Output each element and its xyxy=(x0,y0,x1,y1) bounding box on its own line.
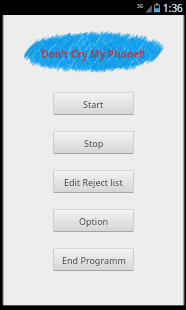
staticText: End Programm xyxy=(62,254,126,266)
staticText: Option xyxy=(79,215,109,227)
button[interactable]: Option xyxy=(53,209,134,232)
button[interactable]: End Programm xyxy=(53,248,134,271)
button[interactable]: Stop xyxy=(53,131,134,154)
staticText: Stop xyxy=(84,137,104,149)
button[interactable]: Edit Reject list xyxy=(53,170,134,193)
staticText: Don't Cry My Phone!! xyxy=(41,47,145,61)
button[interactable]: Start xyxy=(53,92,134,115)
staticText: Edit Reject list xyxy=(64,176,123,188)
staticText: 1:36 xyxy=(163,1,183,15)
staticText: Start xyxy=(83,98,104,110)
staticText: 3G xyxy=(137,3,144,10)
